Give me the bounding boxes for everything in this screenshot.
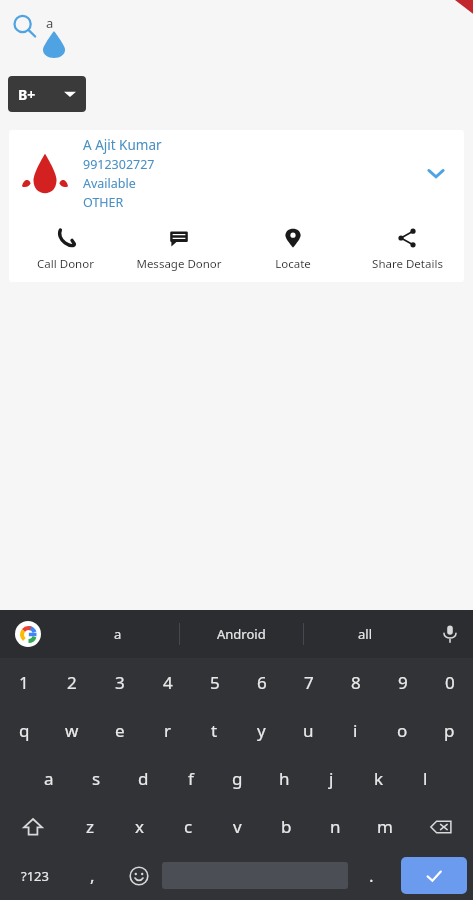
staticText: B+	[18, 85, 36, 104]
button[interactable]: r	[144, 706, 191, 754]
button[interactable]: l	[402, 754, 449, 802]
button[interactable]: Emoji	[115, 851, 162, 900]
button[interactable]: A Ajit Kumar	[9, 130, 464, 282]
button[interactable]: m	[360, 802, 409, 851]
button[interactable]: 3	[96, 658, 144, 706]
staticText: ?123	[21, 867, 49, 885]
button[interactable]: 2	[48, 658, 96, 706]
button[interactable]: i	[332, 706, 379, 754]
button[interactable]: 5	[191, 658, 238, 706]
button[interactable]: n	[311, 802, 360, 851]
button[interactable]: a	[56, 610, 179, 658]
staticText: Android	[217, 625, 266, 643]
staticText: 1	[19, 671, 29, 694]
button[interactable]: Voice input	[427, 610, 473, 658]
staticText: Locate	[275, 256, 311, 272]
button[interactable]: b	[262, 802, 311, 851]
staticText: t	[211, 719, 218, 742]
button[interactable]: f	[167, 754, 214, 802]
button[interactable]: 7	[285, 658, 332, 706]
staticText: g	[232, 767, 243, 790]
staticText: Message Donor	[136, 256, 222, 272]
button[interactable]: all	[304, 610, 427, 658]
staticText: p	[444, 719, 455, 742]
staticText: a	[44, 767, 54, 790]
button[interactable]: w	[48, 706, 96, 754]
button[interactable]: Call Donor	[9, 221, 122, 278]
staticText: v	[233, 815, 242, 838]
staticText: q	[19, 719, 30, 742]
button[interactable]: z	[65, 802, 115, 851]
button[interactable]: h	[261, 754, 308, 802]
button[interactable]: c	[164, 802, 213, 851]
button[interactable]: y	[238, 706, 285, 754]
button[interactable]: Message Donor	[122, 221, 236, 278]
button[interactable]: j	[308, 754, 355, 802]
staticText: ,	[90, 864, 95, 887]
staticText: x	[135, 815, 144, 838]
button[interactable]: Search	[10, 12, 40, 42]
button[interactable]: g	[214, 754, 261, 802]
staticText: Share Details	[372, 256, 443, 272]
staticText: 8	[351, 671, 361, 694]
staticText: u	[303, 719, 314, 742]
button[interactable]: Share Details	[350, 221, 464, 278]
button[interactable]: B+	[8, 76, 86, 112]
button[interactable]: ,	[69, 851, 115, 900]
staticText: OTHER	[83, 194, 124, 211]
button[interactable]: 8	[332, 658, 379, 706]
staticText: j	[329, 767, 334, 790]
button[interactable]: Android	[180, 610, 303, 658]
button[interactable]: Backspace	[409, 802, 473, 851]
button[interactable]: Enter	[401, 857, 467, 894]
button[interactable]: Expand	[414, 151, 458, 195]
button[interactable]: v	[213, 802, 262, 851]
staticText: o	[397, 719, 408, 742]
button[interactable]: x	[115, 802, 164, 851]
button[interactable]: e	[96, 706, 144, 754]
staticText: 4	[163, 671, 173, 694]
staticText: w	[65, 719, 79, 742]
button[interactable]: Locate	[236, 221, 350, 278]
staticText: d	[138, 767, 149, 790]
staticText: a	[114, 625, 122, 643]
staticText: Available	[83, 175, 136, 192]
button[interactable]: 9	[379, 658, 426, 706]
button[interactable]: .	[348, 851, 395, 900]
button[interactable]: u	[285, 706, 332, 754]
button[interactable]: 0	[426, 658, 473, 706]
button[interactable]: d	[120, 754, 167, 802]
button[interactable]: 6	[238, 658, 285, 706]
button[interactable]: q	[0, 706, 48, 754]
staticText: l	[423, 767, 428, 790]
button[interactable]: a	[25, 754, 73, 802]
button[interactable]: Shift	[0, 802, 65, 851]
staticText: 2	[67, 671, 77, 694]
staticText: 7	[304, 671, 314, 694]
button[interactable]: 1	[0, 658, 48, 706]
staticText: s	[92, 767, 101, 790]
staticText: a	[46, 14, 54, 32]
staticText: h	[279, 767, 290, 790]
button[interactable]: s	[73, 754, 120, 802]
staticText: f	[188, 767, 194, 790]
staticText: n	[330, 815, 341, 838]
button[interactable]: t	[191, 706, 238, 754]
button[interactable]: o	[379, 706, 426, 754]
button[interactable]: k	[355, 754, 402, 802]
staticText: z	[86, 815, 94, 838]
staticText: .	[369, 864, 374, 887]
button[interactable]: ?123	[0, 851, 69, 900]
button[interactable]: Google	[0, 610, 56, 658]
staticText: b	[281, 815, 292, 838]
button[interactable]: p	[426, 706, 473, 754]
staticText: i	[353, 719, 358, 742]
button[interactable]: 4	[144, 658, 191, 706]
staticText: A Ajit Kumar	[83, 136, 162, 154]
staticText: 3	[115, 671, 125, 694]
staticText: all	[358, 625, 373, 643]
staticText: y	[257, 719, 266, 742]
staticText: c	[184, 815, 193, 838]
staticText: Call Donor	[37, 256, 94, 272]
